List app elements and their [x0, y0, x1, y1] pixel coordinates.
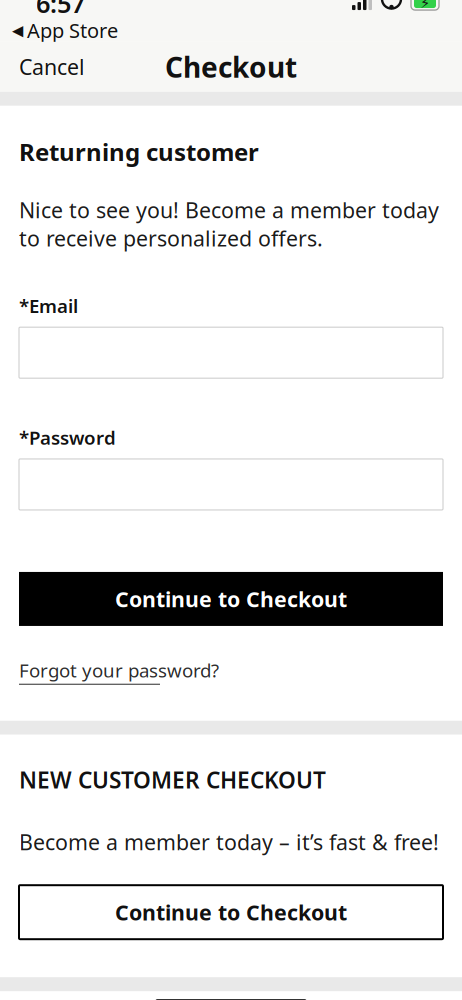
staticText: Checkout	[165, 48, 297, 85]
button[interactable]: Cancel	[0, 41, 104, 93]
button[interactable]: Continue to Checkout	[19, 885, 443, 939]
staticText: *Email	[19, 293, 78, 318]
staticText: Forgot your password?	[19, 658, 219, 683]
staticText: NEW CUSTOMER CHECKOUT	[19, 765, 326, 795]
staticText: Become a member today – it’s fast & free…	[19, 828, 439, 856]
staticText: Continue to Checkout	[115, 898, 347, 926]
staticText: ◀	[12, 22, 23, 39]
staticText: Cancel	[19, 53, 85, 81]
staticText: Continue to Checkout	[115, 585, 347, 613]
staticText: App Store	[27, 17, 118, 44]
staticText: 6:57	[36, 0, 85, 20]
button[interactable]: Continue to Checkout	[19, 572, 443, 626]
staticText: Returning customer	[19, 136, 259, 168]
button[interactable]: Forgot your password?	[19, 654, 219, 689]
staticText: ⚡︎	[420, 0, 430, 11]
staticText: Nice to see you! Become a member today t…	[19, 196, 439, 252]
staticText: *Password	[19, 425, 116, 450]
